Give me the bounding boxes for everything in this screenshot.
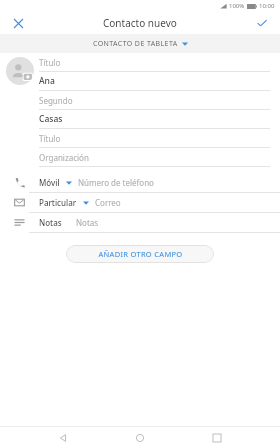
button[interactable]: Guardar: [253, 14, 271, 32]
staticText: Organización: [39, 152, 89, 163]
staticText: Título: [39, 133, 61, 144]
button[interactable]: Añadir foto: [6, 57, 34, 85]
staticText: Particular: [39, 197, 77, 208]
button[interactable]: Atrás: [49, 427, 77, 448]
button[interactable]: Título: [39, 129, 270, 148]
button[interactable]: Cerrar: [9, 14, 27, 32]
staticText: Notas: [39, 217, 62, 228]
staticText: Notas: [76, 217, 99, 228]
button[interactable]: Inicio: [126, 427, 154, 448]
button[interactable]: Particular: [0, 193, 280, 213]
staticText: Contacto nuevo: [103, 16, 177, 30]
staticText: Móvil: [39, 177, 60, 188]
staticText: 10:00: [259, 2, 275, 10]
button[interactable]: Móvil: [0, 173, 280, 193]
staticText: Título: [39, 57, 61, 68]
button[interactable]: Título: [39, 53, 270, 72]
button[interactable]: CONTACTO DE TABLETA: [0, 34, 280, 53]
button[interactable]: Notas: [0, 213, 280, 233]
button[interactable]: Organización: [39, 148, 270, 167]
staticText: Casas: [39, 113, 63, 125]
staticText: Correo: [95, 197, 121, 208]
button[interactable]: Casas: [39, 110, 270, 129]
staticText: 100%: [229, 2, 245, 10]
button[interactable]: Segundo: [39, 91, 270, 110]
staticText: Ana: [39, 75, 55, 87]
staticText: AÑADIR OTRO CAMPO: [98, 249, 183, 259]
button[interactable]: Ana: [39, 72, 270, 91]
button[interactable]: Recientes: [203, 427, 231, 448]
button[interactable]: AÑADIR OTRO CAMPO: [66, 245, 214, 263]
staticText: Segundo: [39, 95, 73, 106]
staticText: Número de teléfono: [78, 177, 154, 188]
staticText: CONTACTO DE TABLETA: [93, 39, 178, 49]
